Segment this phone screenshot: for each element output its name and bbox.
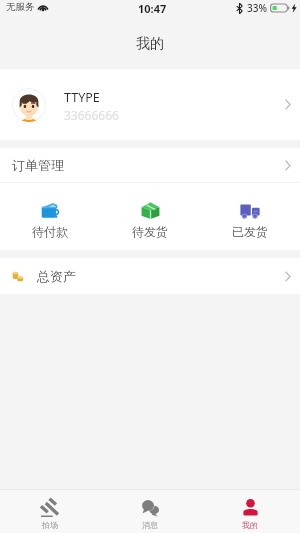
button[interactable]: Profile — [200, 493, 300, 530]
staticText: 总资产 — [37, 268, 76, 284]
staticText: TTYPE — [64, 89, 100, 106]
button[interactable]: Auctions — [0, 493, 100, 530]
staticText: 33% — [247, 1, 267, 15]
button[interactable]: 已发货 — [200, 195, 300, 239]
button[interactable]: 总资产 — [0, 258, 300, 294]
button[interactable]: 待付款 — [0, 195, 100, 239]
staticText: 无服务 — [6, 1, 35, 13]
staticText: 我的 — [136, 35, 164, 53]
other: Profile — [241, 498, 260, 517]
button[interactable]: TTYPE — [0, 69, 300, 140]
staticText: 我的 — [242, 520, 258, 530]
staticText: 待发货 — [132, 224, 168, 239]
button[interactable]: 订单管理 — [0, 148, 300, 182]
staticText: 已发货 — [232, 224, 268, 239]
staticText: 拍场 — [42, 520, 58, 530]
staticText: 消息 — [142, 520, 158, 530]
other: Order management — [285, 160, 291, 171]
other: Auctions — [41, 498, 60, 517]
other: Profile details — [285, 99, 291, 110]
button[interactable]: Messages — [100, 493, 200, 530]
staticText: 待付款 — [32, 224, 68, 239]
button[interactable]: 待发货 — [100, 195, 200, 239]
staticText: 10:47 — [138, 1, 167, 16]
other: Messages — [141, 498, 160, 517]
staticText: 33666666 — [64, 107, 119, 123]
other: Total assets — [285, 271, 291, 282]
staticText: 订单管理 — [12, 157, 64, 173]
